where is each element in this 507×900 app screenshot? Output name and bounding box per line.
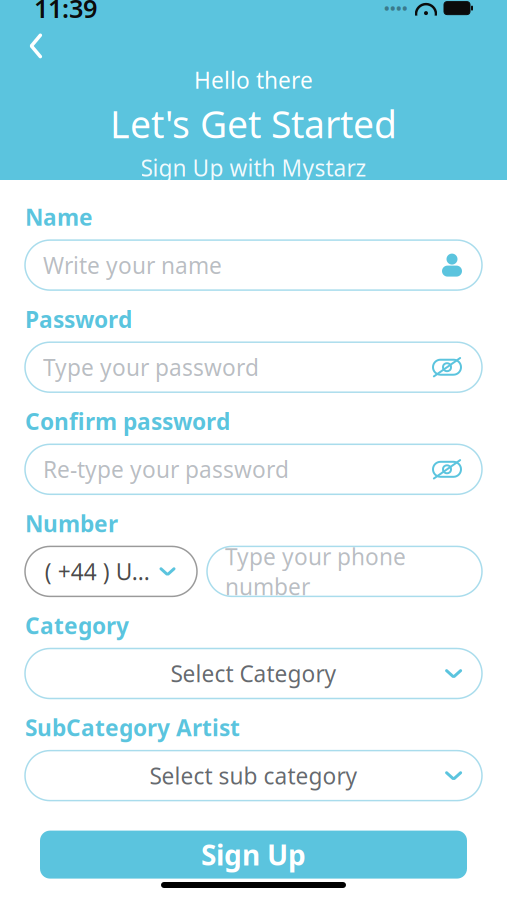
staticText: Write your name (43, 250, 222, 280)
button[interactable]: Select sub category (25, 751, 482, 801)
staticText: Select Category (170, 658, 336, 689)
staticText: Number (25, 508, 118, 538)
staticText: Type your password (43, 352, 259, 382)
staticText: Type your phone number (225, 541, 406, 601)
staticText: ( +44 ) U... (45, 556, 150, 586)
button[interactable]: Show confirm password (430, 456, 464, 482)
staticText: Category (25, 610, 129, 640)
staticText: Sign Up with Mystarz (140, 153, 366, 183)
button[interactable]: Select Category (25, 648, 482, 698)
staticText: •••• (384, 0, 408, 18)
button[interactable]: ( +44 ) U... (25, 546, 197, 596)
staticText: 11:39 (34, 0, 97, 25)
button[interactable]: Sign Up (40, 831, 467, 879)
button[interactable]: Show password (430, 354, 464, 380)
staticText: Password (25, 304, 132, 334)
staticText: Hello there (194, 65, 313, 95)
staticText: SubCategory Artist (25, 712, 240, 743)
staticText: Confirm password (25, 406, 230, 436)
staticText: Re-type your password (43, 454, 289, 484)
button[interactable]: Back (15, 27, 57, 65)
staticText: Name (25, 202, 93, 232)
staticText: Sign Up (201, 836, 306, 873)
staticText: Let's Get Started (110, 99, 397, 149)
staticText: Select sub category (149, 761, 357, 791)
